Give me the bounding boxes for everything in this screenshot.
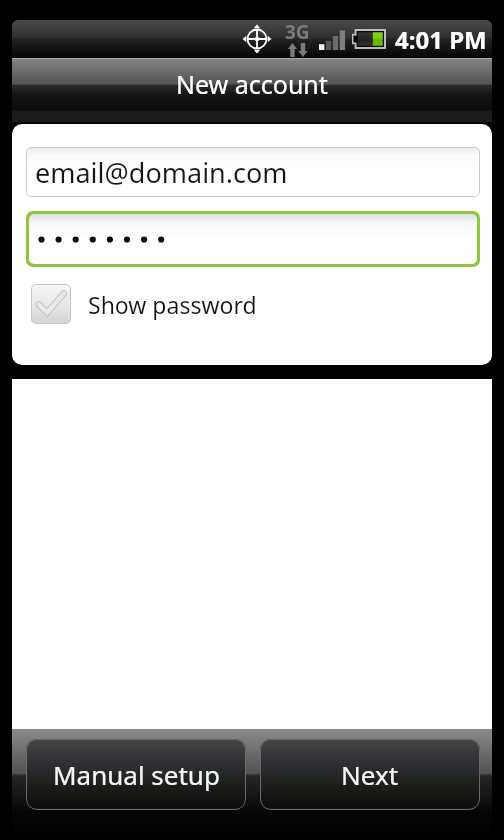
staticText: Manual setup — [53, 757, 220, 792]
staticText: email@domain.com — [35, 154, 288, 191]
button[interactable]: email@domain.com — [26, 147, 480, 197]
staticText: 4:01 PM — [395, 23, 487, 56]
staticText: Show password — [88, 289, 257, 320]
staticText: Next — [341, 757, 399, 792]
button[interactable] — [29, 214, 477, 264]
staticText: 3G — [285, 20, 310, 45]
button[interactable]: Next — [260, 739, 480, 810]
button[interactable]: Manual setup — [26, 739, 246, 810]
staticText: New account — [176, 67, 328, 101]
button[interactable]: Show password — [31, 284, 257, 324]
